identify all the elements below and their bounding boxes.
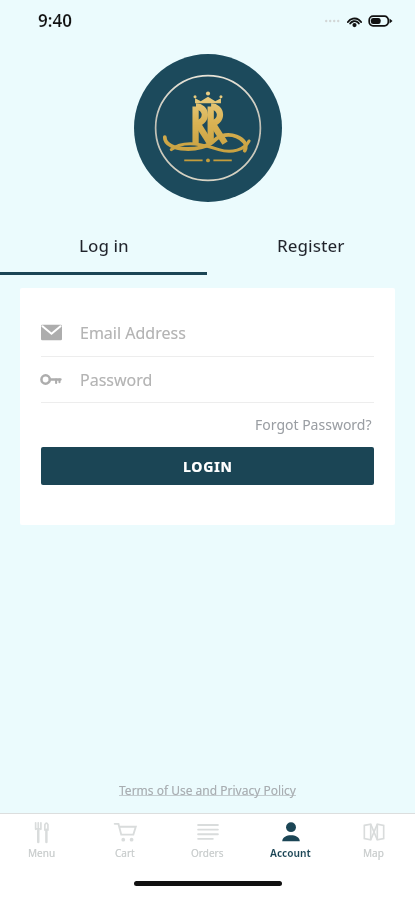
button[interactable]: Account — [249, 814, 332, 866]
button[interactable]: Orders — [166, 814, 249, 866]
staticText: Menu — [28, 846, 56, 860]
staticText: LOGIN — [183, 457, 233, 476]
button[interactable]: Terms of Use and Privacy Policy — [115, 778, 300, 802]
staticText: Forgot Password? — [255, 415, 372, 434]
staticText: Orders — [191, 846, 224, 860]
staticText: Account — [270, 846, 311, 860]
button[interactable]: Forgot Password? — [253, 412, 374, 437]
button[interactable]: LOGIN — [41, 447, 374, 485]
staticText: Map — [363, 846, 384, 860]
staticText: 9:40 — [38, 9, 72, 32]
staticText: Terms of Use and Privacy Policy — [119, 782, 296, 798]
button[interactable]: Email Address — [20, 310, 395, 355]
staticText: Password — [80, 369, 153, 391]
button[interactable]: Cart — [83, 814, 166, 866]
button[interactable]: Password — [20, 357, 395, 402]
button[interactable]: Register — [207, 228, 415, 262]
button[interactable]: Menu — [0, 814, 83, 866]
button[interactable]: Map — [332, 814, 415, 866]
staticText: Email Address — [80, 322, 186, 344]
staticText: Cart — [115, 846, 135, 860]
button[interactable]: Log in — [0, 228, 207, 262]
staticText: Register — [277, 234, 345, 257]
staticText: Log in — [79, 234, 129, 257]
